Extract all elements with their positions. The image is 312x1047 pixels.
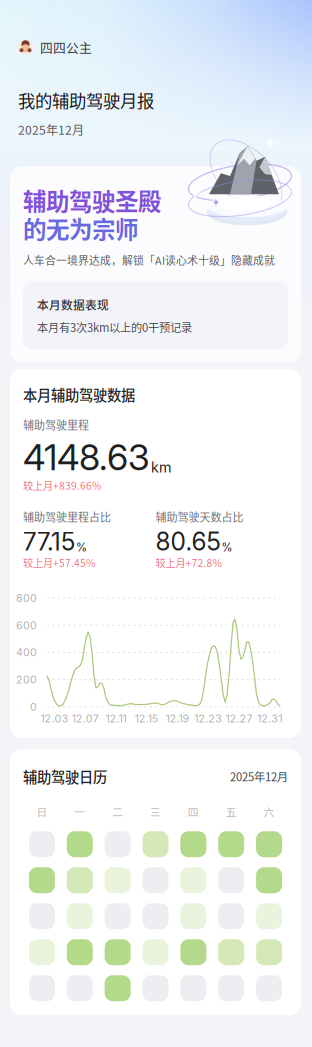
staticText: 本月有3次3km以上的0干预记录 [37,319,192,335]
staticText: % [221,541,232,554]
staticText: 六 [264,804,275,819]
staticText: 较上月+72.8% [155,555,221,570]
staticText: 0 [30,700,37,713]
staticText: 2025年12月 [18,121,84,138]
staticText: 日 [36,804,47,819]
staticText: 80.65 [155,527,220,556]
staticText: 600 [16,619,37,632]
staticText: 12.27 [225,712,252,725]
staticText: km [151,459,172,476]
staticText: 200 [16,673,37,686]
staticText: 辅助驾驶日历 [23,766,107,787]
staticText: 四四公主 [40,38,92,56]
staticText: 800 [16,592,37,605]
staticText: 2025年12月 [230,768,288,784]
staticText: 二 [112,804,123,819]
staticText: 较上月+57.45% [23,555,95,570]
staticText: 辅助驾驶天数占比 [155,509,243,525]
staticText: 12.31 [257,712,282,725]
staticText: 4148.63 [23,436,150,479]
staticText: 辅助驾驶里程 [23,417,89,433]
staticText: 12.07 [72,712,99,725]
staticText: 我的辅助驾驶月报 [18,87,154,113]
staticText: 400 [16,646,37,659]
staticText: 本月数据表现 [37,296,109,313]
staticText: 较上月+839.66% [23,478,101,493]
staticText: 的无为宗师 [23,211,138,245]
staticText: 一 [74,804,85,819]
staticText: 12.15 [135,712,159,725]
staticText: 12.23 [194,712,222,725]
staticText: 本月辅助驾驶数据 [23,384,135,405]
staticText: 12.03 [40,712,68,725]
staticText: 12.19 [165,712,189,725]
staticText: 四 [188,804,199,819]
staticText: 三 [150,804,161,819]
staticText: 12.11 [105,712,126,725]
staticText: 辅助驾驶圣殿 [23,183,161,217]
staticText: 五 [226,804,237,819]
staticText: 辅助驾驶里程占比 [23,509,111,525]
staticText: % [76,541,87,554]
staticText: 人车合一境界达成，解锁「AI读心术十级」隐藏成就 [23,252,275,268]
button[interactable]: 四四公主 [18,38,92,56]
staticText: 77.15 [23,527,75,556]
